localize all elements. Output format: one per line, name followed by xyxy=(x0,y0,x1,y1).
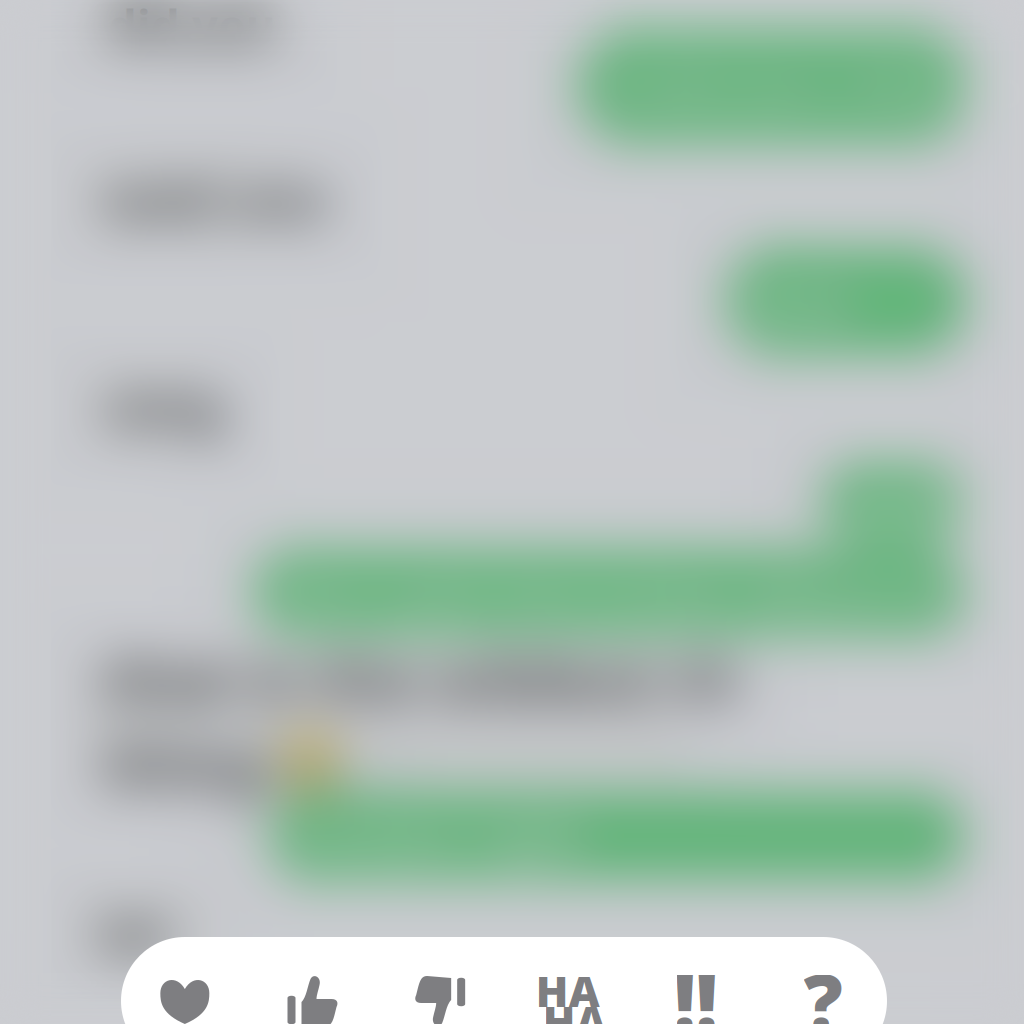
staticText: HA xyxy=(536,962,600,1019)
staticText: i told you she would xyxy=(600,52,1024,122)
staticText: yeah xyxy=(844,470,964,540)
staticText: wait soo xyxy=(104,163,328,233)
staticText: 😂 xyxy=(272,729,348,799)
staticText: thing xyxy=(102,723,266,804)
button[interactable]: Emphasize xyxy=(632,937,759,1024)
staticText: HA xyxy=(543,992,607,1024)
button[interactable]: Haha xyxy=(504,937,632,1024)
button[interactable]: Like xyxy=(249,937,376,1024)
button[interactable]: Question xyxy=(759,937,887,1024)
staticText: lol xyxy=(100,898,165,968)
staticText: did you xyxy=(108,0,275,55)
staticText: omg xyxy=(106,371,225,441)
staticText: ? xyxy=(804,950,843,1024)
staticText: look xyxy=(748,266,854,336)
staticText: !! xyxy=(673,950,717,1024)
button[interactable]: Dislike xyxy=(376,937,504,1024)
staticText: i know right xyxy=(292,801,589,871)
staticText: that is the wildest th xyxy=(102,638,740,719)
button[interactable]: Love xyxy=(121,937,249,1024)
staticText: she said she knew about it xyxy=(276,558,939,628)
